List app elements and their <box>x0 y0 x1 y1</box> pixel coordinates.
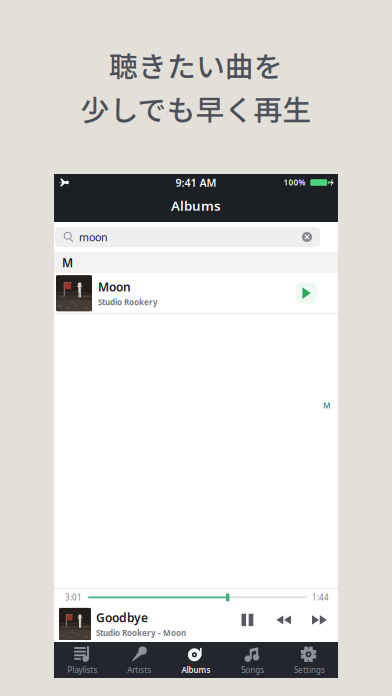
staticText: Studio Rookery <box>98 297 158 307</box>
staticText: 9:41 AM <box>175 175 216 190</box>
staticText: Studio Rookery - Moon <box>96 628 186 638</box>
button[interactable]: Playlists <box>54 642 111 678</box>
staticText: Settings <box>294 665 325 675</box>
staticText: Moon <box>98 279 131 295</box>
button[interactable]: Moon <box>54 273 338 314</box>
staticText: 100% <box>283 177 305 188</box>
staticText: Playlists <box>67 665 97 675</box>
button[interactable]: Songs <box>224 642 281 678</box>
staticText: M <box>323 400 330 411</box>
staticText: 聴きたい曲を <box>109 44 283 85</box>
button[interactable]: Previous <box>271 612 296 635</box>
staticText: 1:44 <box>312 592 329 603</box>
staticText: moon <box>79 230 108 244</box>
staticText: Goodbye <box>96 610 148 625</box>
button[interactable]: Settings <box>281 642 338 678</box>
staticText: Songs <box>241 665 264 675</box>
staticText: 3:01 <box>65 592 82 603</box>
staticText: 少しでも早く再生 <box>80 87 311 129</box>
button[interactable]: Artists <box>111 642 168 678</box>
staticText: Artists <box>127 665 151 675</box>
staticText: Albums <box>181 665 210 675</box>
button[interactable]: Pause <box>235 613 259 635</box>
button[interactable]: Next <box>307 612 332 636</box>
button[interactable]: Albums <box>168 642 224 678</box>
staticText: Albums <box>171 197 221 214</box>
staticText: M <box>62 254 73 270</box>
